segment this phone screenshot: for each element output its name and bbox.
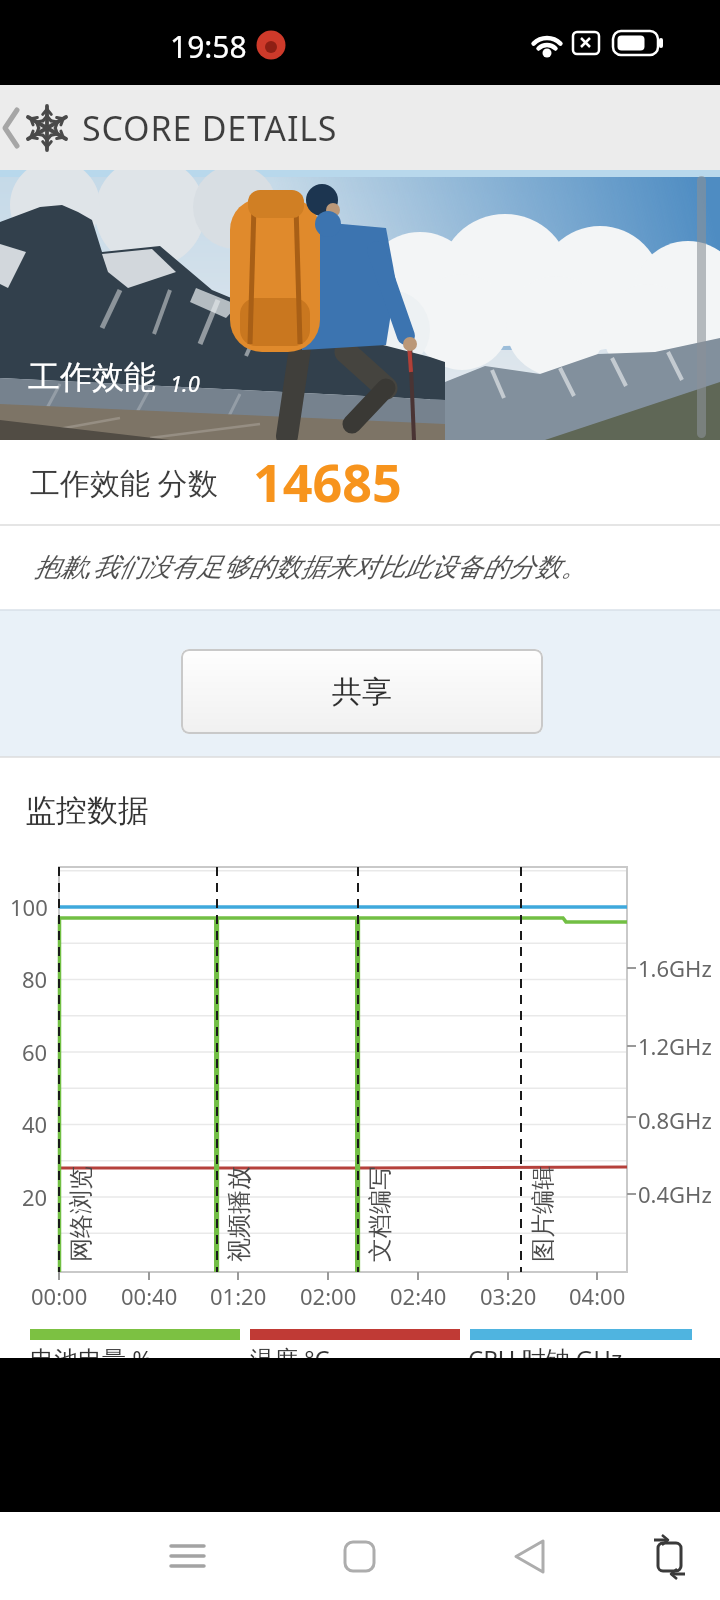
staticText: 视频播放	[224, 1166, 254, 1262]
staticText: 共享	[332, 673, 392, 711]
staticText: 1.0	[170, 368, 200, 398]
staticText: 0.4GHz	[638, 1179, 712, 1209]
staticText: 图片编辑	[528, 1166, 558, 1262]
staticText: 60	[22, 1037, 48, 1067]
staticText: 02:00	[300, 1281, 357, 1311]
button[interactable]	[320, 1520, 400, 1592]
staticText: 1.6GHz	[638, 953, 712, 983]
button[interactable]	[150, 1520, 230, 1592]
staticText: 02:40	[390, 1281, 447, 1311]
staticText: 网络浏览	[66, 1166, 96, 1262]
staticText: 温度 °C	[250, 1342, 330, 1358]
button[interactable]: 共享	[181, 649, 543, 734]
staticText: 抱歉,我们没有足够的数据来对比此设备的分数。	[34, 548, 587, 584]
button[interactable]	[640, 1520, 704, 1592]
staticText: 0.8GHz	[638, 1105, 712, 1135]
staticText: 00:00	[31, 1281, 88, 1311]
staticText: 01:20	[210, 1281, 267, 1311]
staticText: 80	[22, 964, 48, 994]
button[interactable]: SCORE DETAILS	[82, 96, 602, 160]
staticText: 文档编写	[365, 1166, 395, 1262]
staticText: 电池电量 %	[30, 1342, 153, 1358]
staticText: 100	[10, 892, 48, 922]
staticText: 19:58	[170, 26, 247, 64]
staticText: 03:20	[480, 1281, 537, 1311]
staticText: 工作效能 分数	[30, 462, 218, 503]
staticText: 20	[22, 1182, 48, 1212]
staticText: 40	[22, 1109, 48, 1139]
button[interactable]	[492, 1520, 572, 1592]
staticText: 04:00	[569, 1281, 626, 1311]
staticText: 14685	[253, 446, 402, 517]
staticText: 监控数据	[25, 791, 149, 830]
staticText: 工作效能	[28, 357, 156, 397]
staticText: 00:40	[121, 1281, 178, 1311]
staticText: CPU 时钟 GHz	[468, 1342, 623, 1358]
staticText: SCORE DETAILS	[82, 105, 338, 151]
staticText: 1.2GHz	[638, 1031, 712, 1061]
